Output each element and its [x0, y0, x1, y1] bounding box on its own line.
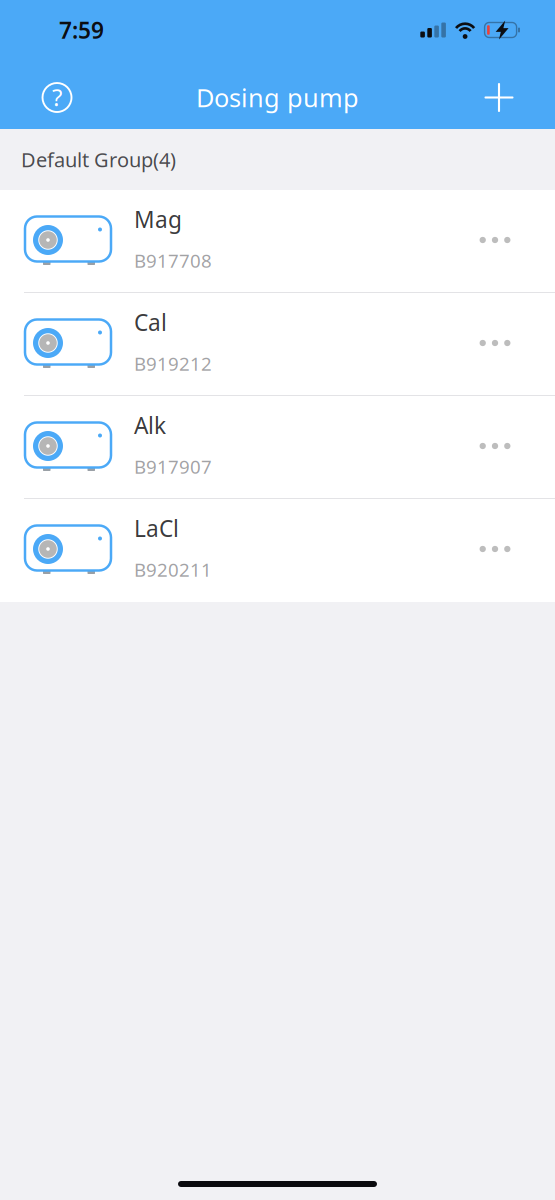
staticText: 7:59: [59, 15, 104, 45]
staticText: Mag: [134, 204, 182, 234]
staticText: Alk: [134, 410, 166, 440]
staticText: Default Group(4): [21, 146, 176, 173]
staticText: LaCl: [134, 513, 179, 543]
button[interactable]: Cal: [0, 293, 555, 396]
staticText: B917907: [134, 454, 212, 479]
button[interactable]: LaCl: [0, 499, 555, 602]
staticText: ?: [52, 81, 62, 113]
staticText: B917708: [134, 248, 212, 273]
button[interactable]: Mag: [0, 190, 555, 293]
staticText: Dosing pump: [196, 81, 359, 114]
button[interactable]: Alk: [0, 396, 555, 499]
button[interactable]: Help: [35, 75, 79, 119]
staticText: B919212: [134, 351, 212, 376]
button[interactable]: Add device: [476, 75, 520, 119]
staticText: B920211: [134, 557, 212, 582]
staticText: Cal: [134, 307, 167, 337]
